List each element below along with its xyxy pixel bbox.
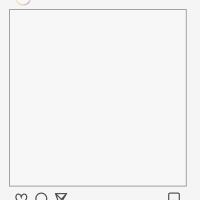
button[interactable]: Comment [35, 193, 47, 200]
button[interactable]: Share [55, 193, 67, 200]
button[interactable]: Like [15, 193, 27, 200]
button[interactable]: Save [168, 192, 180, 200]
